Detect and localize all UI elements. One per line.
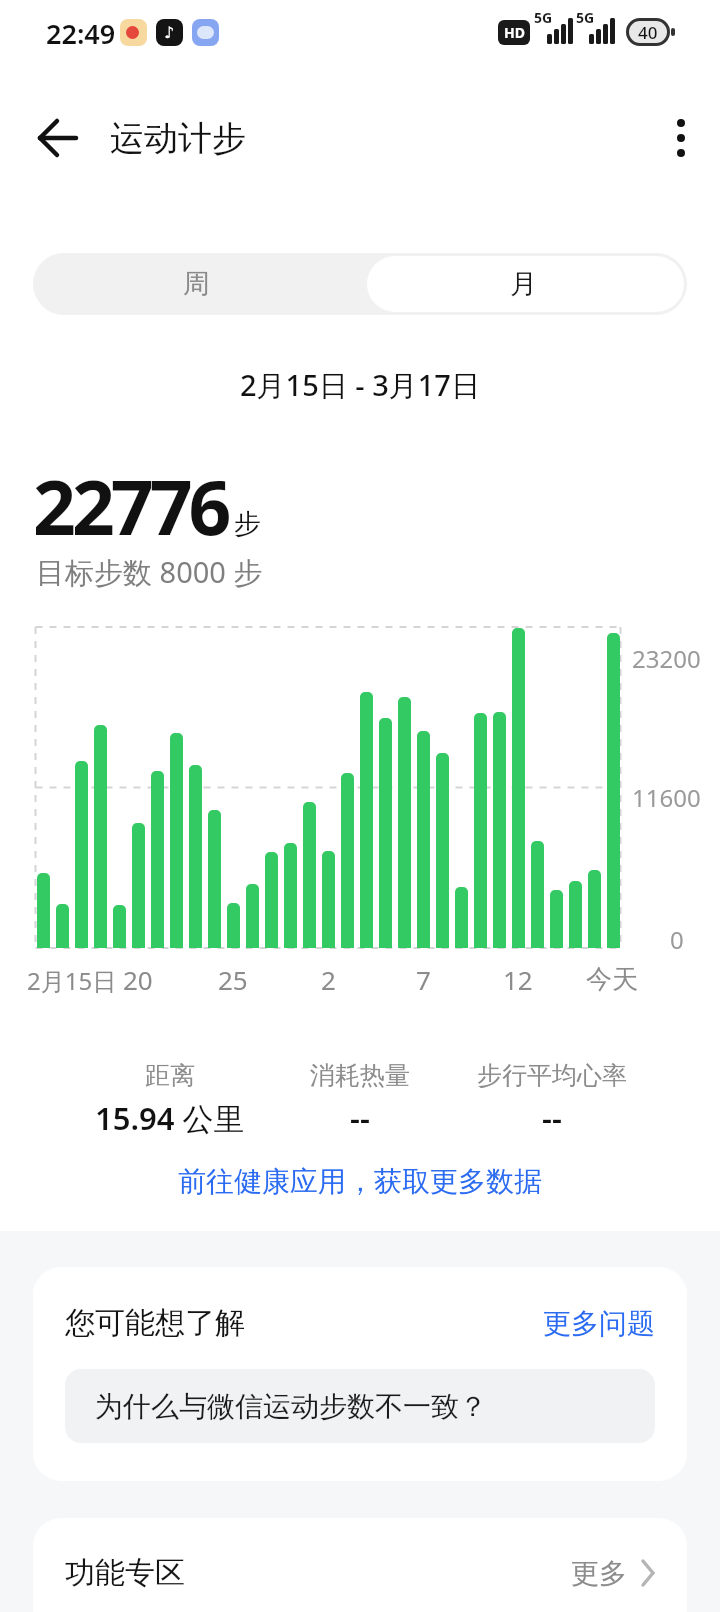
staticText: 11600 <box>632 781 701 813</box>
button[interactable]: 功能专区 <box>33 1518 687 1612</box>
staticText: 0 <box>670 923 684 955</box>
staticText: 目标步数 8000 步 <box>36 552 263 588</box>
staticText: 月 <box>510 267 537 301</box>
staticText: 距离 <box>145 1060 195 1091</box>
staticText: 7 <box>416 962 431 996</box>
staticText: 今天 <box>586 963 638 996</box>
staticText: 功能专区 <box>65 1554 185 1592</box>
staticText: ♪ <box>164 23 175 42</box>
staticText: 15.94 公里 <box>95 1097 245 1139</box>
button[interactable]: 为什么与微信运动步数不一致？ <box>65 1369 655 1443</box>
staticText: 前往健康应用，获取更多数据 <box>178 1164 542 1199</box>
staticText: 20 <box>123 962 153 996</box>
staticText: 更多 <box>571 1556 627 1591</box>
staticText: 5G <box>534 8 553 26</box>
staticText: 您可能想了解 <box>65 1304 245 1342</box>
staticText: 12 <box>503 962 533 996</box>
staticText: 消耗热量 <box>310 1060 410 1091</box>
staticText: 2月15日 <box>27 964 117 997</box>
staticText: 5G <box>576 8 595 26</box>
staticText: 步 <box>234 507 261 541</box>
staticText: 2 <box>321 962 336 996</box>
button[interactable]: 月 <box>360 253 687 315</box>
staticText: 周 <box>183 267 210 301</box>
staticText: 22:49 <box>46 15 116 52</box>
staticText: 2月15日 - 3月17日 <box>240 365 480 405</box>
staticText: 23200 <box>632 642 701 674</box>
staticText: 更多问题 <box>543 1306 655 1341</box>
button[interactable] <box>655 110 707 166</box>
staticText: -- <box>542 1097 562 1139</box>
staticText: 为什么与微信运动步数不一致？ <box>95 1389 487 1424</box>
button[interactable]: 周 <box>33 253 360 315</box>
button[interactable] <box>30 112 86 164</box>
staticText: 22776 <box>33 455 228 557</box>
staticText: 步行平均心率 <box>477 1060 627 1091</box>
staticText: 40 <box>638 21 658 44</box>
staticText: 运动计步 <box>110 117 246 160</box>
staticText: 25 <box>218 962 248 996</box>
staticText: HD <box>504 23 525 42</box>
button[interactable]: 更多问题 <box>533 1303 655 1343</box>
staticText: -- <box>350 1097 370 1139</box>
